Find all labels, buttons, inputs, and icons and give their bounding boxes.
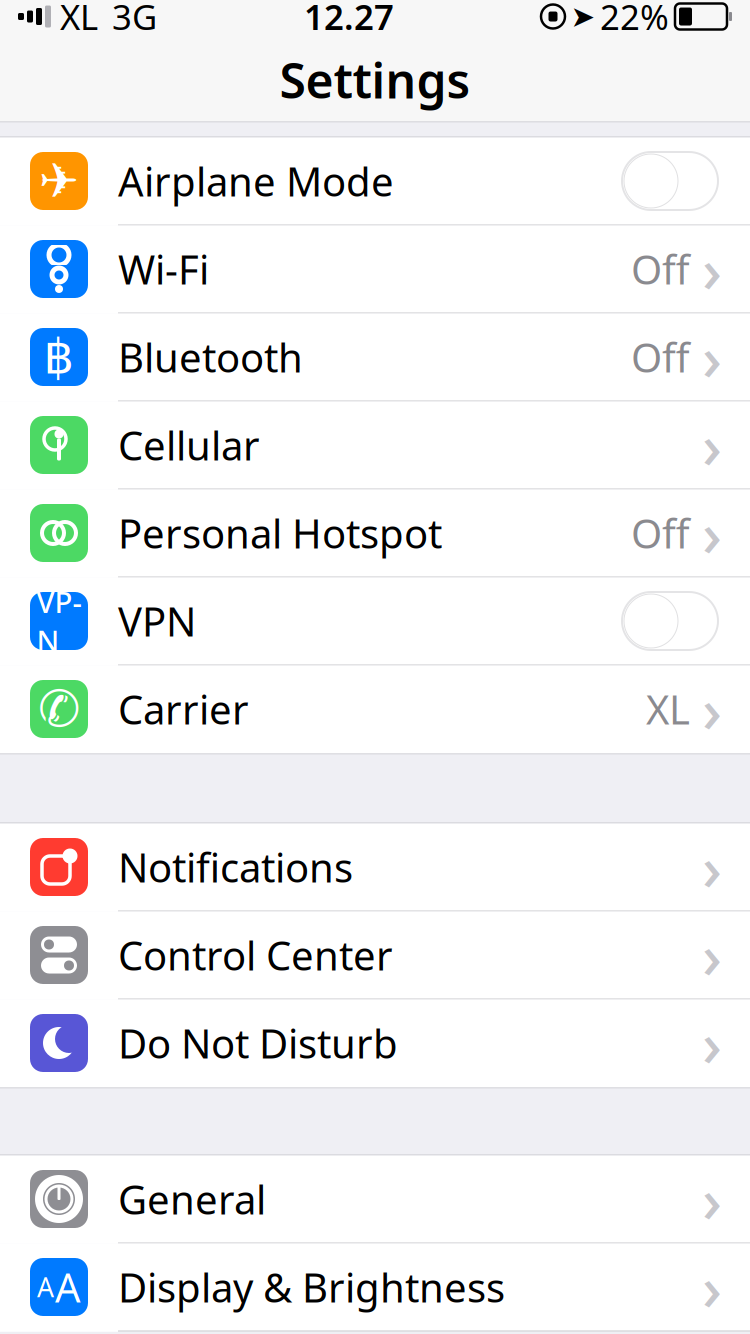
button[interactable]: ✆ [0,665,750,753]
staticText: ➤ [570,0,595,33]
staticText: General [118,1172,266,1225]
staticText: VPN [118,594,196,647]
staticText: Off [631,506,690,559]
staticText: A [37,1269,54,1305]
button[interactable]: ฿ [0,313,750,401]
staticText: › [702,404,722,486]
button[interactable]: Notifications [0,823,750,911]
staticText: Airplane Mode [118,154,394,207]
button[interactable]: Control Center [0,911,750,999]
staticText: Do Not Disturb [118,1016,398,1069]
staticText: 3G [112,0,157,39]
staticText: Off [631,330,690,383]
button[interactable]: Do Not Disturb [0,999,750,1087]
staticText: A [55,1260,81,1313]
staticText: › [702,1002,722,1084]
staticText: 22% [600,0,669,39]
button[interactable]: Personal Hotspot [0,489,750,577]
staticText: › [702,826,722,908]
staticText: Bluetooth [118,330,303,383]
button[interactable]: VPN [0,577,750,665]
button[interactable]: Wi-Fi [0,225,750,313]
staticText: XL [646,682,690,735]
button[interactable]: General [0,1155,750,1243]
staticText: › [702,492,722,574]
staticText: Notifications [118,840,353,893]
staticText: › [702,316,722,398]
staticText: › [702,914,722,996]
staticText: › [702,1158,722,1240]
staticText: Cellular [118,418,260,471]
button[interactable]: A [0,1243,750,1331]
staticText: ✈ [39,154,79,208]
staticText: Personal Hotspot [118,506,442,559]
button[interactable]: ✈ [0,137,750,225]
button[interactable]: Cellular [0,401,750,489]
staticText: Off [631,242,690,295]
staticText: Carrier [118,682,249,735]
staticText: › [702,1246,722,1328]
staticText: › [702,668,722,750]
staticText: 12.27 [304,0,394,39]
staticText: VPN [36,582,81,660]
staticText: XL [60,0,98,39]
staticText: Wi-Fi [118,242,209,295]
staticText: ✆ [38,680,80,738]
staticText: Settings [279,48,470,112]
staticText: Control Center [118,928,393,981]
staticText: › [702,228,722,310]
staticText: ฿ [43,330,74,384]
staticText: Display & Brightness [118,1260,505,1313]
